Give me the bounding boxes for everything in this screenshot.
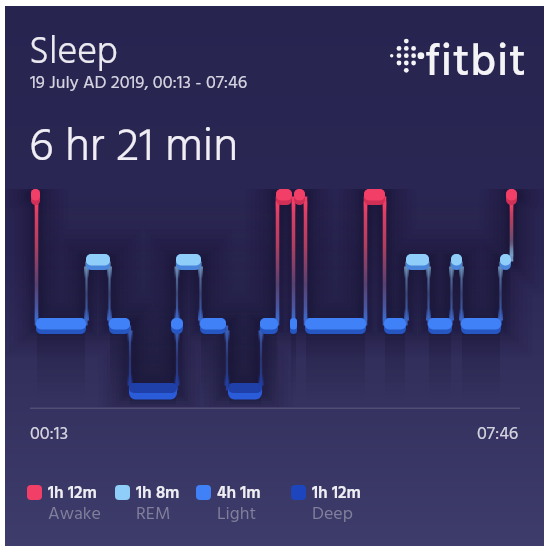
staticText: 6 hr 21 min: [29, 110, 239, 185]
staticText: Awake: [48, 500, 101, 529]
staticText: 1h 8m: [136, 480, 180, 507]
staticText: REM: [136, 500, 171, 529]
button[interactable]: fitbit: [425, 29, 527, 99]
staticText: Light: [217, 500, 257, 529]
staticText: Sleep: [29, 23, 118, 84]
staticText: Deep: [312, 500, 353, 529]
staticText: 00:13: [30, 420, 69, 449]
staticText: 1h 12m: [312, 480, 361, 507]
staticText: 4h 1m: [217, 480, 261, 507]
staticText: 19 July AD 2019, 00:13 - 07:46: [30, 69, 248, 98]
staticText: 07:46: [477, 420, 519, 449]
staticText: 1h 12m: [48, 480, 97, 507]
